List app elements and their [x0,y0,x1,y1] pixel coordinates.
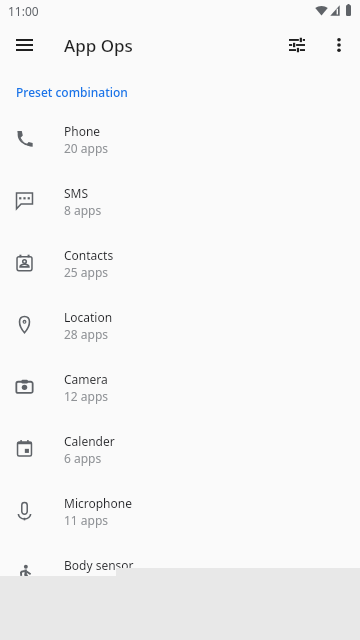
staticText: Camera [64,371,108,387]
staticText: 4 apps [64,574,102,590]
staticText: Preset combination [16,84,128,100]
staticText: 25 apps [64,264,109,280]
staticText: Contacts [64,247,114,263]
button[interactable]: Navigation menu [3,24,45,66]
button[interactable]: Contacts [0,232,360,294]
staticText: 6 apps [64,450,102,466]
button[interactable]: Calender [0,418,360,480]
button[interactable]: More options [318,24,360,66]
button[interactable]: Preset combination [0,78,128,106]
staticText: Body sensor [64,557,134,573]
button[interactable]: Body sensor [0,542,360,604]
staticText: Microphone [64,495,132,511]
staticText: 20 apps [64,140,109,156]
staticText: 11 apps [64,512,109,528]
staticText: 11:00 [8,3,39,19]
staticText: Phone [64,123,101,139]
button[interactable]: Filter [276,24,318,66]
button[interactable]: Phone [0,108,360,170]
staticText: 8 apps [64,202,102,218]
staticText: 12 apps [64,388,109,404]
staticText: SMS [64,185,89,201]
staticText: 28 apps [64,326,109,342]
button[interactable]: Microphone [0,480,360,542]
staticText: Calender [64,433,115,449]
button[interactable]: SMS [0,170,360,232]
button[interactable]: Location [0,294,360,356]
button[interactable]: Camera [0,356,360,418]
staticText: Location [64,309,113,325]
staticText: App Ops [64,34,133,57]
